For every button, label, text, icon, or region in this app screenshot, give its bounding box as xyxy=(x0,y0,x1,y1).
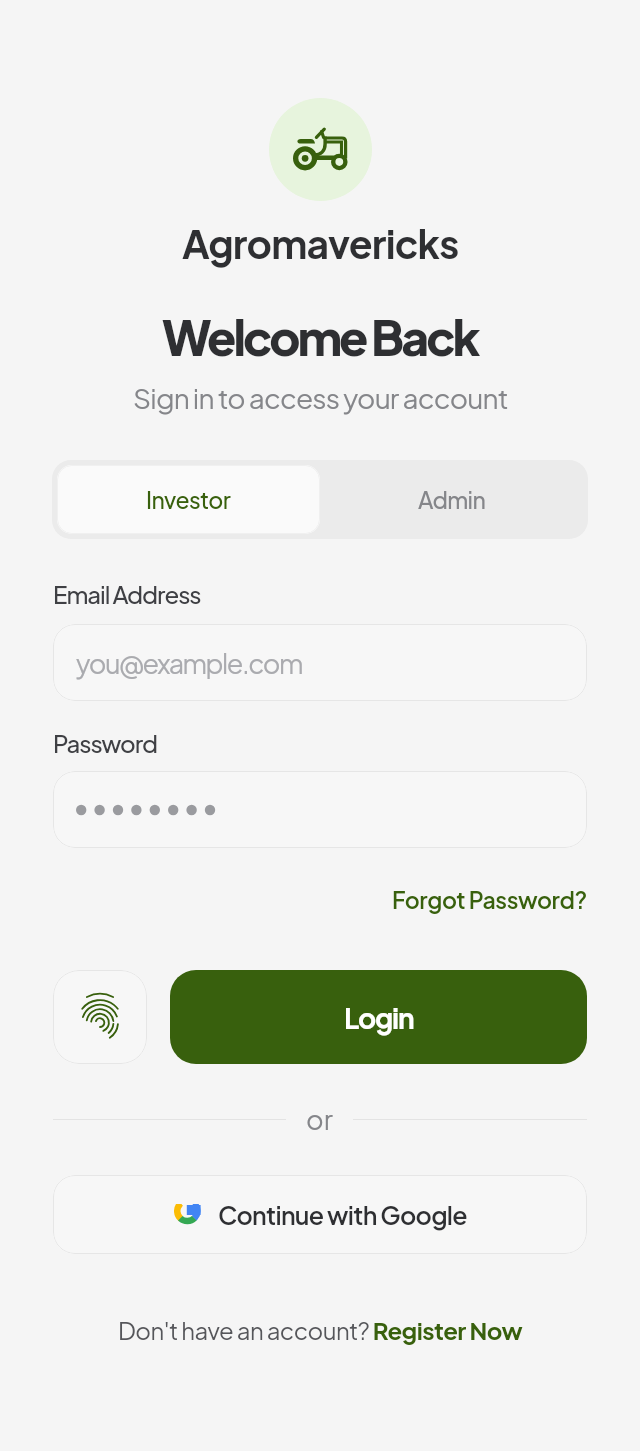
button[interactable]: Forgot Password? xyxy=(392,885,587,914)
button[interactable]: Don't have an account? Register Now xyxy=(118,1315,523,1345)
staticText: Investor xyxy=(146,485,231,514)
staticText: or xyxy=(306,1102,333,1136)
button[interactable]: you@example.com xyxy=(53,624,587,701)
button[interactable]: Admin xyxy=(320,465,583,534)
staticText: Login xyxy=(344,1000,414,1035)
staticText: Email Address xyxy=(53,579,201,609)
button[interactable]: Login xyxy=(170,970,587,1064)
staticText: Sign in to access your account xyxy=(133,380,508,415)
staticText: Agromavericks xyxy=(182,219,459,268)
button[interactable] xyxy=(53,771,587,848)
button[interactable]: Investor xyxy=(57,465,320,534)
button[interactable]: Continue with Google xyxy=(53,1175,587,1254)
staticText: Welcome Back xyxy=(162,306,478,366)
staticText: you@example.com xyxy=(76,646,303,680)
staticText: Password xyxy=(53,728,158,758)
staticText: Admin xyxy=(418,485,486,514)
button[interactable]: Sign in with fingerprint xyxy=(53,970,147,1064)
staticText: Forgot Password? xyxy=(392,885,587,914)
staticText: Continue with Google xyxy=(218,1199,467,1230)
staticText: Don't have an account? Register Now xyxy=(118,1315,523,1345)
